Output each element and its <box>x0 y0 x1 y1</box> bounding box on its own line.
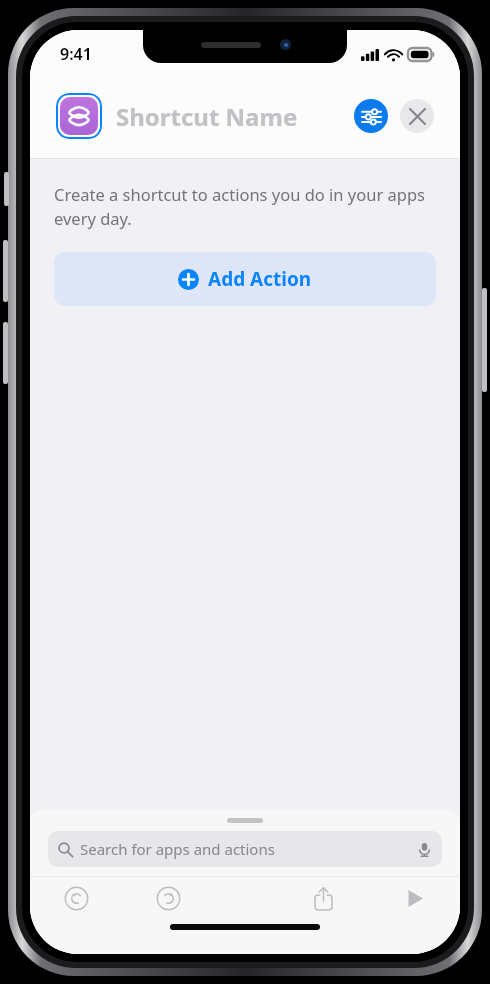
button[interactable]: Run <box>369 877 460 920</box>
button[interactable]: Shortcut details <box>354 99 388 133</box>
button[interactable]: Close <box>400 99 434 133</box>
button[interactable]: Share <box>278 877 369 920</box>
staticText: Create a shortcut to actions you do in y… <box>54 183 436 230</box>
other: Voice search <box>417 842 432 857</box>
staticText: Add Action <box>208 266 312 292</box>
button[interactable]: Add Action <box>54 252 436 306</box>
button[interactable]: Choose shortcut icon <box>56 93 102 139</box>
button[interactable]: Undo <box>30 877 122 920</box>
button[interactable]: Redo <box>122 877 214 920</box>
staticText: Search for apps and actions <box>80 839 275 859</box>
staticText: 9:41 <box>60 43 92 65</box>
staticText: Shortcut Name <box>116 100 298 133</box>
button[interactable]: Search for apps and actions <box>48 831 442 867</box>
